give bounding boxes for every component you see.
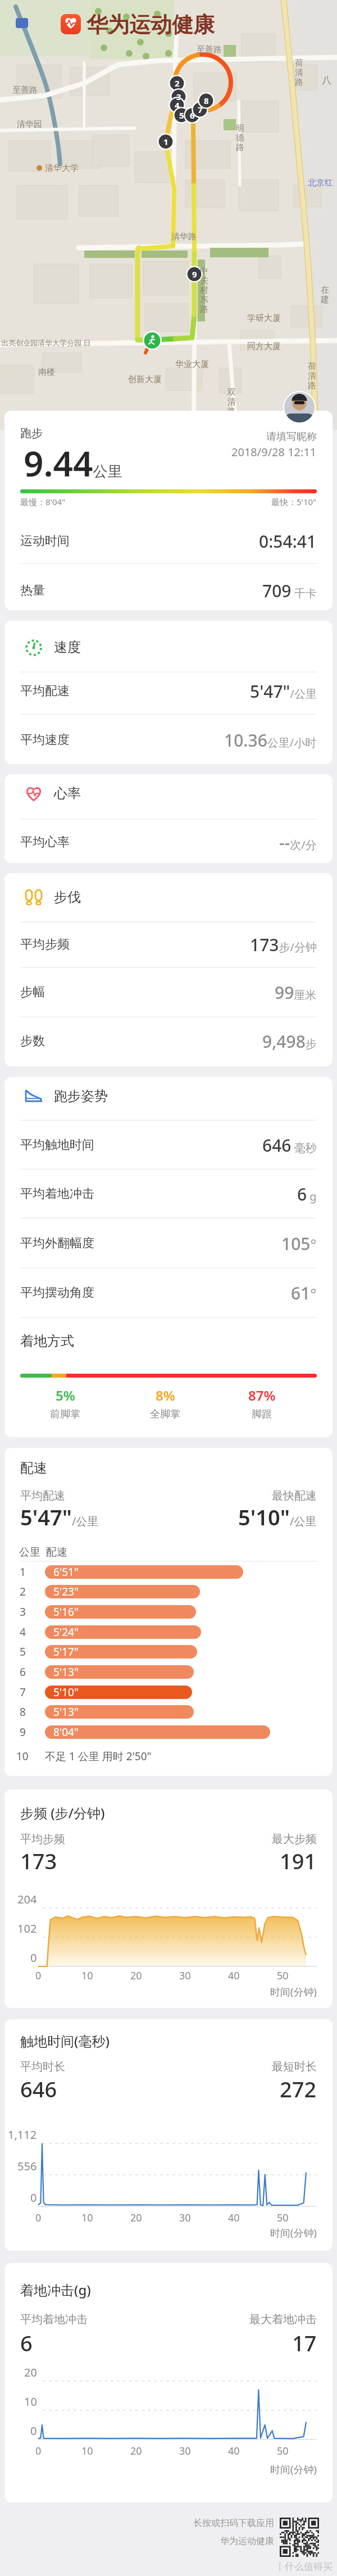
staticText: 步伐 — [54, 889, 81, 906]
staticText: 10 — [81, 1969, 93, 1983]
button[interactable]: 至善路 — [0, 0, 337, 430]
staticText: 平均配速 — [20, 1489, 65, 1503]
staticText: 3 — [20, 1605, 26, 1619]
staticText: 9.44公里 — [24, 439, 122, 487]
button[interactable] — [4, 1789, 333, 2008]
staticText: 10.36公里/小时 — [224, 729, 317, 752]
staticText: 6 — [190, 110, 195, 121]
staticText: 建 — [321, 294, 329, 305]
staticText: 173 — [20, 1846, 57, 1875]
staticText: 双 — [227, 387, 236, 398]
staticText: 最快配速 — [272, 1489, 317, 1503]
staticText: 5'10" — [53, 1685, 79, 1700]
staticText: 9 — [20, 1725, 26, 1739]
staticText: 平均时长 — [20, 2060, 65, 2074]
staticText: 荷 — [295, 58, 303, 69]
staticText: 着地方式 — [20, 1333, 74, 1350]
staticText: 8'04" — [53, 1725, 79, 1739]
staticText: 村 — [200, 285, 208, 296]
staticText: 心率 — [54, 785, 81, 802]
staticText: 8% — [156, 1386, 175, 1405]
staticText: 平均步频 — [20, 1832, 65, 1846]
staticText: 触地时间(毫秒) — [20, 2032, 110, 2050]
staticText: 5'13" — [53, 1665, 79, 1679]
staticText: 646 — [20, 2074, 57, 2103]
staticText: 5'10"/公里 — [238, 1502, 317, 1532]
staticText: 平均步频 — [20, 937, 70, 952]
staticText: 创新大厦 — [128, 374, 162, 385]
staticText: 102 — [17, 1921, 37, 1936]
staticText: 德 — [236, 133, 244, 143]
staticText: 1 — [163, 136, 168, 147]
staticText: 八 — [322, 74, 331, 86]
staticText: 最大着地冲击 — [249, 2313, 317, 2327]
staticText: 清华园 — [17, 119, 42, 130]
staticText: 热量 — [20, 583, 45, 598]
button[interactable] — [4, 2263, 333, 2502]
staticText: 公里 配速 — [19, 1544, 67, 1559]
staticText: 40 — [228, 2211, 240, 2225]
staticText: 6'51" — [53, 1565, 79, 1579]
staticText: 5 — [20, 1644, 26, 1659]
staticText: 6 — [20, 2328, 33, 2357]
staticText: 0 — [30, 1950, 37, 1965]
staticText: 最快：5'10" — [271, 496, 317, 507]
staticText: 至善路 — [12, 85, 38, 96]
staticText: 路 — [227, 406, 236, 417]
staticText: 华为运动健康 — [86, 11, 215, 38]
staticText: 清华大学 — [45, 163, 79, 174]
staticText: 2 — [20, 1584, 26, 1599]
staticText: 5'24" — [53, 1625, 79, 1639]
staticText: 8 — [204, 95, 209, 106]
staticText: 最短时长 — [272, 2060, 317, 2074]
button[interactable] — [4, 411, 333, 610]
staticText: 1 — [20, 1565, 26, 1579]
staticText: 北京红 — [308, 178, 333, 188]
staticText: 0 — [35, 2444, 42, 2458]
staticText: 配速 — [20, 1460, 47, 1476]
staticText: 9 — [192, 269, 197, 280]
staticText: 在 — [321, 285, 329, 296]
staticText: 时间(分钟) — [270, 2226, 317, 2240]
staticText: 丨什么值得买 — [275, 2561, 333, 2573]
staticText: 7 — [198, 104, 203, 115]
button[interactable] — [4, 873, 333, 1066]
button[interactable] — [4, 774, 333, 863]
staticText: 30 — [179, 2211, 191, 2225]
staticText: 前脚掌 — [50, 1408, 80, 1421]
staticText: 5'23" — [53, 1584, 79, 1599]
staticText: 105° — [281, 1232, 317, 1255]
button[interactable] — [4, 1448, 333, 1776]
staticText: 0 — [35, 1969, 42, 1983]
staticText: 运动时间 — [20, 533, 70, 549]
staticText: 7 — [20, 1685, 26, 1700]
staticText: 20 — [24, 2365, 37, 2380]
staticText: 20 — [130, 2444, 142, 2458]
staticText: 40 — [228, 1969, 240, 1983]
button[interactable] — [4, 2019, 333, 2251]
staticText: --次/分 — [279, 831, 317, 854]
staticText: 173步/分钟 — [250, 933, 317, 956]
staticText: 61° — [291, 1282, 317, 1305]
staticText: 0 — [30, 2190, 37, 2205]
staticText: 明 — [236, 123, 244, 134]
staticText: 5% — [56, 1386, 75, 1405]
staticText: 南楼 — [38, 367, 55, 378]
staticText: 709 千卡 — [262, 579, 317, 602]
staticText: 1,112 — [8, 2127, 37, 2142]
staticText: 步频 (步/分钟) — [20, 1803, 105, 1822]
staticText: 10 — [81, 2211, 93, 2225]
button[interactable] — [4, 621, 333, 764]
staticText: 跑步 — [20, 426, 43, 440]
staticText: 5 — [179, 110, 184, 121]
staticText: 50 — [277, 1969, 289, 1983]
staticText: 5'16" — [53, 1605, 79, 1619]
staticText: 平均外翻幅度 — [20, 1235, 94, 1251]
staticText: 脚跟 — [252, 1408, 272, 1421]
staticText: 87% — [248, 1386, 276, 1405]
staticText: 路 — [236, 142, 244, 153]
staticText: 40 — [228, 2444, 240, 2458]
staticText: 20 — [130, 1969, 142, 1983]
button[interactable] — [4, 1077, 333, 1437]
staticText: 跑步姿势 — [54, 1088, 108, 1105]
